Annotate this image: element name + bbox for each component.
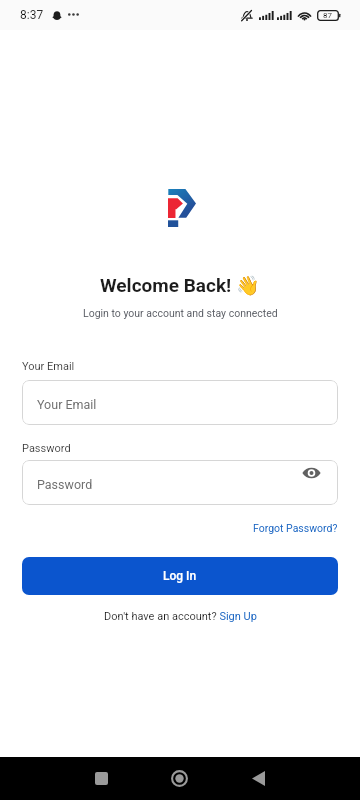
staticText: 8:37 — [20, 8, 44, 22]
button[interactable]: Don't have an account? Sign Up — [104, 610, 257, 623]
button[interactable]: Log In — [22, 557, 338, 595]
button[interactable]: Your Email — [22, 380, 338, 425]
button[interactable]: Home — [159, 758, 199, 798]
staticText: Login to your account and stay connected — [83, 307, 278, 319]
staticText: Password — [22, 442, 71, 455]
staticText: Log In — [163, 569, 197, 583]
staticText: Password — [37, 477, 93, 492]
staticText: 87 — [323, 11, 332, 20]
button[interactable]: Back — [238, 758, 278, 798]
staticText: Your Email — [37, 397, 97, 412]
staticText: Welcome Back! 👋 — [100, 274, 260, 296]
button[interactable]: Show password — [299, 461, 323, 485]
button[interactable]: Forgot Password? — [253, 522, 338, 534]
button[interactable]: Password — [22, 460, 338, 505]
staticText: Your Email — [22, 360, 75, 373]
button[interactable]: Recent apps — [81, 758, 121, 798]
